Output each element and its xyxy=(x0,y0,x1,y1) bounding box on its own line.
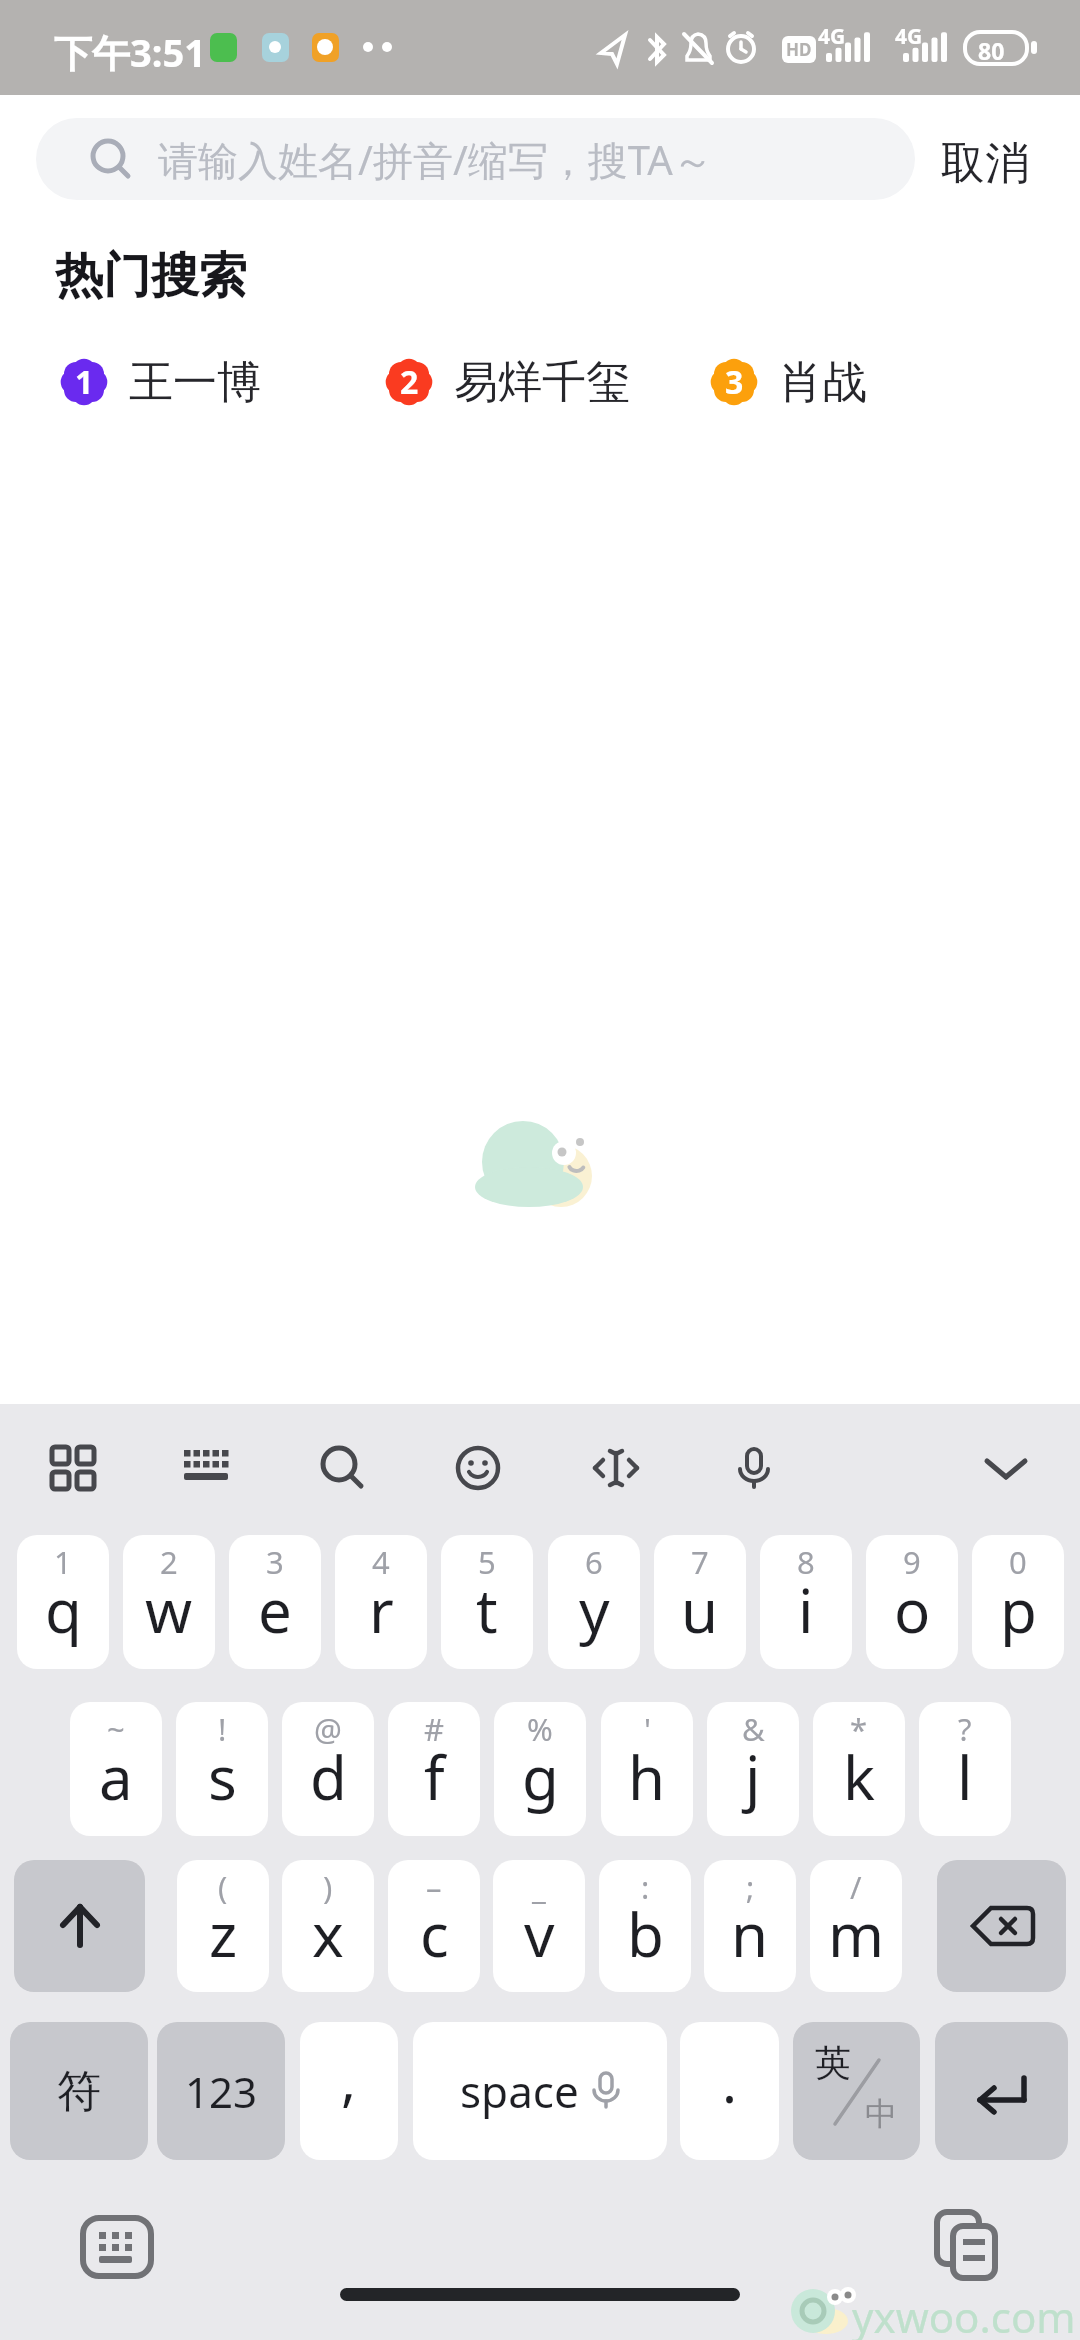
button[interactable]: 1 xyxy=(55,352,261,412)
staticText: 肖战 xyxy=(779,355,867,410)
button[interactable] xyxy=(935,2022,1068,2160)
button[interactable]: . xyxy=(680,2022,779,2160)
button[interactable]: % xyxy=(494,1702,586,1836)
button[interactable]: 取消 xyxy=(941,136,1029,191)
button[interactable]: & xyxy=(707,1702,799,1836)
staticText: 2 xyxy=(400,360,419,404)
staticText: HD xyxy=(786,38,812,61)
button[interactable]: ~ xyxy=(70,1702,162,1836)
button[interactable] xyxy=(80,2215,154,2279)
button[interactable]: 3 xyxy=(705,352,867,412)
button[interactable]: 9 xyxy=(866,1535,958,1669)
button[interactable]: 7 xyxy=(654,1535,746,1669)
staticText: y xyxy=(579,1569,610,1651)
button[interactable] xyxy=(14,1860,145,1992)
staticText: ( xyxy=(218,1866,228,1908)
staticText: ' xyxy=(644,1708,651,1750)
staticText: # xyxy=(424,1708,445,1750)
button[interactable] xyxy=(455,1445,501,1491)
staticText: f xyxy=(424,1736,445,1818)
staticText: d xyxy=(310,1736,347,1818)
button[interactable]: 4 xyxy=(335,1535,427,1669)
staticText: b xyxy=(627,1893,664,1975)
staticText: ? xyxy=(958,1708,972,1750)
staticText: k xyxy=(843,1736,876,1818)
staticText: 123 xyxy=(185,2063,258,2120)
staticText: i xyxy=(798,1569,814,1651)
staticText: m xyxy=(828,1893,885,1975)
staticText: a xyxy=(99,1736,133,1818)
button[interactable]: 1 xyxy=(17,1535,109,1669)
button[interactable]: ? xyxy=(919,1702,1011,1836)
staticText: n xyxy=(731,1893,769,1975)
staticText: * xyxy=(850,1708,868,1750)
staticText: ) xyxy=(323,1866,333,1908)
staticText: . xyxy=(722,2043,738,2119)
button[interactable]: 123 xyxy=(157,2022,285,2160)
button[interactable] xyxy=(933,2210,1003,2280)
button[interactable]: , xyxy=(300,2022,398,2160)
staticText: 3 xyxy=(725,360,744,404)
button[interactable]: 0 xyxy=(972,1535,1064,1669)
button[interactable]: 英 xyxy=(793,2022,920,2160)
button[interactable] xyxy=(183,1445,229,1491)
button[interactable]: @ xyxy=(282,1702,374,1836)
button[interactable]: – xyxy=(388,1860,480,1992)
button[interactable]: 6 xyxy=(548,1535,640,1669)
button[interactable]: 请输入姓名/拼音/缩写，搜TA～ xyxy=(36,118,915,200)
button[interactable] xyxy=(983,1445,1029,1491)
staticText: – xyxy=(426,1866,442,1908)
staticText: space xyxy=(460,2061,579,2121)
button[interactable]: _ xyxy=(493,1860,585,1992)
staticText: 9 xyxy=(903,1541,921,1583)
button[interactable]: 5 xyxy=(441,1535,533,1669)
button[interactable]: ' xyxy=(601,1702,693,1836)
staticText: 0 xyxy=(1009,1541,1027,1583)
button[interactable]: ) xyxy=(282,1860,374,1992)
staticText: z xyxy=(209,1893,238,1975)
staticText: 易烊千玺 xyxy=(454,355,630,410)
staticText: c xyxy=(420,1893,449,1975)
button[interactable]: 8 xyxy=(760,1535,852,1669)
button[interactable]: 3 xyxy=(229,1535,321,1669)
staticText: e xyxy=(258,1569,292,1651)
staticText: 符 xyxy=(57,2064,101,2119)
staticText: & xyxy=(742,1708,765,1750)
staticText: 4G xyxy=(895,22,923,51)
staticText: ! xyxy=(218,1708,227,1750)
button[interactable]: / xyxy=(810,1860,902,1992)
staticText: 4 xyxy=(372,1541,390,1583)
staticText: q xyxy=(45,1569,82,1651)
button[interactable] xyxy=(937,1860,1066,1992)
staticText: 请输入姓名/拼音/缩写，搜TA～ xyxy=(158,132,713,187)
button[interactable]: 2 xyxy=(380,352,630,412)
staticText: yxwoo.com xyxy=(852,2288,1076,2340)
staticText: 下午3:51 xyxy=(54,26,206,78)
staticText: ; xyxy=(746,1866,755,1908)
staticText: 英 xyxy=(815,2040,851,2085)
staticText: u xyxy=(681,1569,719,1651)
button[interactable]: space xyxy=(413,2022,667,2160)
staticText: 王一博 xyxy=(129,355,261,410)
button[interactable] xyxy=(593,1445,639,1491)
staticText: 5 xyxy=(478,1541,496,1583)
button[interactable]: : xyxy=(599,1860,691,1992)
staticText: g xyxy=(522,1736,559,1818)
staticText: h xyxy=(628,1736,666,1818)
staticText: v xyxy=(524,1893,555,1975)
button[interactable]: 2 xyxy=(123,1535,215,1669)
button[interactable] xyxy=(319,1445,365,1491)
staticText: : xyxy=(641,1866,650,1908)
button[interactable] xyxy=(731,1445,777,1491)
staticText: 80 xyxy=(978,35,1005,66)
button[interactable]: * xyxy=(813,1702,905,1836)
button[interactable]: ! xyxy=(176,1702,268,1836)
staticText: o xyxy=(894,1569,931,1651)
button[interactable] xyxy=(50,1445,96,1491)
button[interactable]: ; xyxy=(704,1860,796,1992)
staticText: 2 xyxy=(160,1541,178,1583)
button[interactable]: 符 xyxy=(10,2022,148,2160)
button[interactable]: # xyxy=(388,1702,480,1836)
staticText: 8 xyxy=(797,1541,815,1583)
button[interactable]: ( xyxy=(177,1860,269,1992)
